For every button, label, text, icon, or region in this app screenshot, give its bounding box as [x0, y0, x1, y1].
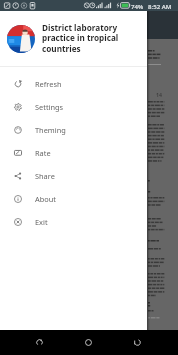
button[interactable]: Refresh: [0, 72, 147, 95]
button[interactable]: Back: [28, 330, 50, 355]
staticText: Rate: [35, 148, 51, 158]
button[interactable]: Rate: [0, 141, 147, 164]
staticText: District laboratory practice in tropical…: [42, 22, 142, 55]
staticText: 14: [156, 91, 162, 98]
button[interactable]: Theming: [0, 118, 147, 141]
staticText: Refresh: [35, 79, 62, 89]
button[interactable]: Share: [0, 164, 147, 187]
staticText: 74%: [131, 2, 144, 10]
button[interactable]: Recents: [126, 330, 148, 355]
button[interactable]: Home: [77, 330, 99, 355]
staticText: About: [35, 194, 56, 204]
staticText: Settings: [35, 102, 64, 112]
staticText: 8:52 AM: [148, 2, 172, 10]
staticText: Theming: [35, 125, 66, 135]
button[interactable]: Settings: [0, 95, 147, 118]
button[interactable]: About: [0, 187, 147, 210]
button[interactable]: Exit: [0, 210, 147, 233]
staticText: Share: [35, 171, 55, 181]
staticText: Exit: [35, 217, 48, 227]
